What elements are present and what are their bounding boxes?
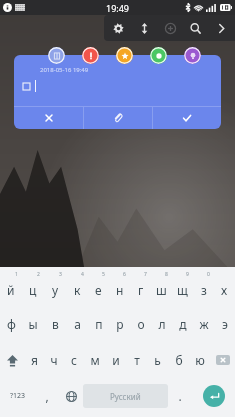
staticText: 1 bbox=[15, 271, 18, 278]
staticText: з bbox=[201, 282, 207, 298]
staticText: н bbox=[116, 282, 124, 298]
button[interactable]: ы bbox=[22, 306, 44, 342]
staticText: е bbox=[95, 282, 102, 298]
staticText: , bbox=[45, 388, 49, 404]
button[interactable]: в bbox=[44, 306, 66, 342]
button[interactable]: Enter bbox=[203, 385, 225, 407]
button[interactable]: ж bbox=[193, 306, 214, 342]
button[interactable]: Settings bbox=[106, 16, 130, 40]
staticText: б bbox=[175, 352, 183, 368]
staticText: ж bbox=[199, 316, 209, 332]
staticText: 5 bbox=[102, 271, 105, 278]
staticText: я bbox=[31, 352, 38, 368]
button[interactable]: Русский bbox=[83, 384, 168, 408]
button[interactable]: ь bbox=[147, 342, 168, 378]
button[interactable]: Cancel bbox=[14, 107, 83, 129]
button[interactable]: Attach bbox=[84, 107, 152, 129]
staticText: в bbox=[52, 316, 59, 332]
button[interactable]: . bbox=[168, 378, 192, 414]
staticText: ?123 bbox=[10, 391, 26, 401]
staticText: и bbox=[112, 352, 120, 368]
staticText: 3 bbox=[59, 271, 62, 278]
button[interactable]: ю bbox=[189, 342, 210, 378]
button[interactable]: Change language bbox=[59, 378, 83, 414]
button[interactable]: Backspace bbox=[210, 342, 235, 378]
staticText: ч bbox=[50, 352, 58, 368]
button[interactable]: 3 bbox=[44, 270, 66, 306]
button[interactable]: 0 bbox=[193, 270, 214, 306]
button[interactable]: и bbox=[105, 342, 126, 378]
staticText: ф bbox=[7, 316, 16, 332]
button[interactable]: Sort bbox=[132, 16, 156, 40]
button[interactable]: 8 bbox=[151, 270, 172, 306]
button[interactable]: о bbox=[130, 306, 151, 342]
staticText: р bbox=[116, 316, 124, 332]
staticText: 19:49 bbox=[106, 2, 130, 14]
staticText: 2 bbox=[37, 271, 40, 278]
staticText: 4 bbox=[81, 271, 84, 278]
button[interactable]: л bbox=[151, 306, 172, 342]
button[interactable]: 6 bbox=[109, 270, 130, 306]
button[interactable]: Category bbox=[150, 47, 167, 64]
button[interactable]: Category bbox=[48, 47, 65, 64]
button[interactable]: 9 bbox=[172, 270, 193, 306]
button[interactable]: д bbox=[172, 306, 193, 342]
staticText: а bbox=[74, 316, 81, 332]
button[interactable]: х bbox=[214, 270, 235, 306]
staticText: ш bbox=[156, 282, 167, 298]
staticText: ы bbox=[28, 316, 38, 332]
button[interactable]: More bbox=[209, 16, 233, 40]
staticText: с bbox=[71, 352, 77, 368]
button[interactable]: Add bbox=[158, 16, 182, 40]
staticText: п bbox=[95, 316, 103, 332]
staticText: 0 bbox=[207, 271, 210, 278]
button[interactable]: с bbox=[64, 342, 84, 378]
staticText: х bbox=[221, 282, 228, 298]
staticText: . bbox=[178, 388, 182, 404]
button[interactable]: а bbox=[66, 306, 88, 342]
button[interactable]: 1 bbox=[0, 270, 22, 306]
staticText: Русский bbox=[110, 391, 141, 402]
staticText: 6 bbox=[123, 271, 126, 278]
button[interactable]: 7 bbox=[130, 270, 151, 306]
button[interactable]: Save bbox=[153, 107, 221, 129]
staticText: ю bbox=[195, 352, 205, 368]
button[interactable]: ?123 bbox=[0, 378, 35, 414]
button[interactable]: э bbox=[214, 306, 235, 342]
button[interactable]: 4 bbox=[66, 270, 88, 306]
staticText: 2018-05-16 19:49 bbox=[40, 66, 89, 74]
button[interactable]: Category bbox=[116, 47, 133, 64]
button[interactable]: ф bbox=[0, 306, 22, 342]
button[interactable]: Search bbox=[183, 16, 207, 40]
staticText: 8 bbox=[165, 271, 168, 278]
staticText: м bbox=[90, 352, 100, 368]
staticText: 9 bbox=[186, 271, 189, 278]
button[interactable]: Category bbox=[184, 47, 201, 64]
staticText: г bbox=[138, 282, 144, 298]
button[interactable]: 2 bbox=[22, 270, 44, 306]
staticText: щ bbox=[177, 282, 188, 298]
button[interactable]: п bbox=[88, 306, 109, 342]
staticText: э bbox=[222, 316, 228, 332]
button[interactable]: , bbox=[35, 378, 59, 414]
button[interactable]: я bbox=[24, 342, 44, 378]
button[interactable]: Checkbox bbox=[19, 79, 33, 93]
button[interactable]: т bbox=[126, 342, 147, 378]
button[interactable]: б bbox=[168, 342, 189, 378]
staticText: т bbox=[134, 352, 140, 368]
staticText: д bbox=[179, 316, 187, 332]
button[interactable]: Shift bbox=[0, 342, 24, 378]
staticText: ь bbox=[154, 352, 161, 368]
staticText: 7 bbox=[144, 271, 147, 278]
staticText: у bbox=[52, 282, 59, 298]
button[interactable]: Category bbox=[82, 47, 99, 64]
staticText: л bbox=[158, 316, 166, 332]
staticText: й bbox=[7, 282, 15, 298]
staticText: к bbox=[74, 282, 81, 298]
button[interactable]: р bbox=[109, 306, 130, 342]
button[interactable]: м bbox=[84, 342, 105, 378]
staticText: ц bbox=[29, 282, 37, 298]
button[interactable]: ч bbox=[44, 342, 64, 378]
staticText: о bbox=[137, 316, 145, 332]
button[interactable]: 5 bbox=[88, 270, 109, 306]
